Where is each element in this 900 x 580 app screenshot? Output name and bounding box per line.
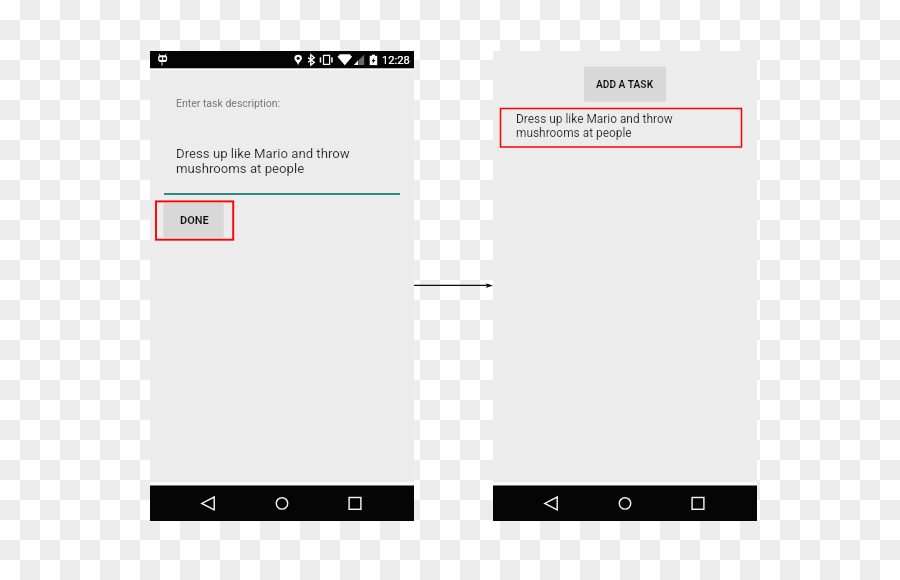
- button[interactable]: Home: [260, 486, 304, 522]
- button[interactable]: DONE: [164, 203, 224, 237]
- staticText: DONE: [180, 214, 209, 227]
- button[interactable]: Home: [603, 486, 647, 522]
- staticText: 12:28: [382, 54, 410, 67]
- button[interactable]: Recent apps: [676, 486, 720, 522]
- button[interactable]: Recent apps: [333, 486, 377, 522]
- staticText: Dress up like Mario and throw mushrooms …: [176, 146, 350, 176]
- staticText: ADD A TASK: [596, 79, 654, 91]
- button[interactable]: ADD A TASK: [584, 68, 666, 102]
- staticText: Enter task description:: [176, 97, 281, 109]
- staticText: Dress up like Mario and throw mushrooms …: [516, 112, 673, 140]
- button[interactable]: Back: [529, 486, 573, 522]
- button[interactable]: Dress up like Mario and throw mushrooms …: [500, 108, 742, 147]
- button[interactable]: Back: [186, 486, 230, 522]
